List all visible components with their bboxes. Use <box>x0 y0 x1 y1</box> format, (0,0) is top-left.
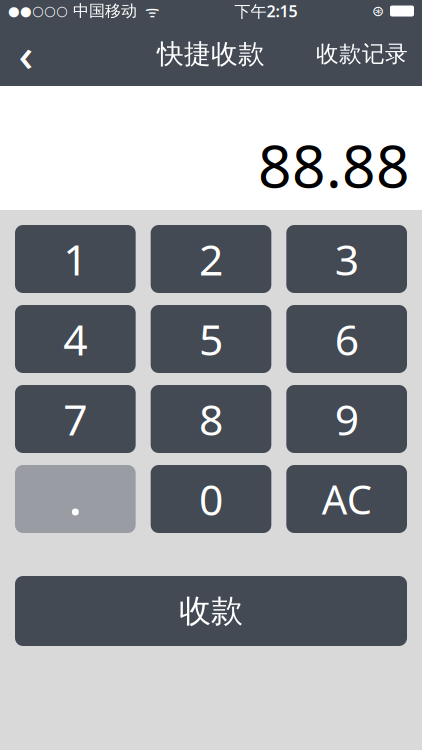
button[interactable]: 2 <box>151 225 271 293</box>
staticText: 88.88 <box>258 126 410 204</box>
staticText: 6 <box>335 311 359 367</box>
staticText: 收款记录 <box>316 40 408 68</box>
button[interactable]: 3 <box>286 225 407 293</box>
staticText: ‹ <box>18 24 33 84</box>
button[interactable]: 收款记录 <box>302 22 422 86</box>
staticText: 8 <box>199 391 223 447</box>
button[interactable]: 9 <box>286 385 407 453</box>
button[interactable]: Decimal point <box>15 465 136 533</box>
staticText: 5 <box>199 311 223 367</box>
button[interactable]: 6 <box>286 305 407 373</box>
staticText: 4 <box>63 311 87 367</box>
button[interactable]: 1 <box>15 225 136 293</box>
button[interactable]: 8 <box>151 385 271 453</box>
staticText: 7 <box>63 391 87 447</box>
staticText: 1 <box>63 231 87 287</box>
staticText: 收款 <box>179 591 243 631</box>
staticText: ●●○○○ <box>8 3 68 18</box>
staticText: 0 <box>199 471 223 527</box>
staticText: ᯤ <box>137 0 160 22</box>
staticText: ⊛ <box>372 3 384 19</box>
button[interactable]: 7 <box>15 385 136 453</box>
staticText: 中国移动 <box>68 1 137 21</box>
staticText: 快捷收款 <box>157 38 265 70</box>
staticText: 3 <box>335 231 359 287</box>
button[interactable]: 收款 <box>15 576 407 646</box>
button[interactable]: 4 <box>15 305 136 373</box>
staticText: 下午2:15 <box>234 0 297 22</box>
staticText: AC <box>322 472 372 525</box>
button[interactable]: 5 <box>151 305 271 373</box>
button[interactable]: Back <box>0 22 52 86</box>
staticText: 9 <box>335 391 359 447</box>
button[interactable]: AC <box>286 465 407 533</box>
button[interactable]: 0 <box>151 465 271 533</box>
staticText: 2 <box>199 231 223 287</box>
